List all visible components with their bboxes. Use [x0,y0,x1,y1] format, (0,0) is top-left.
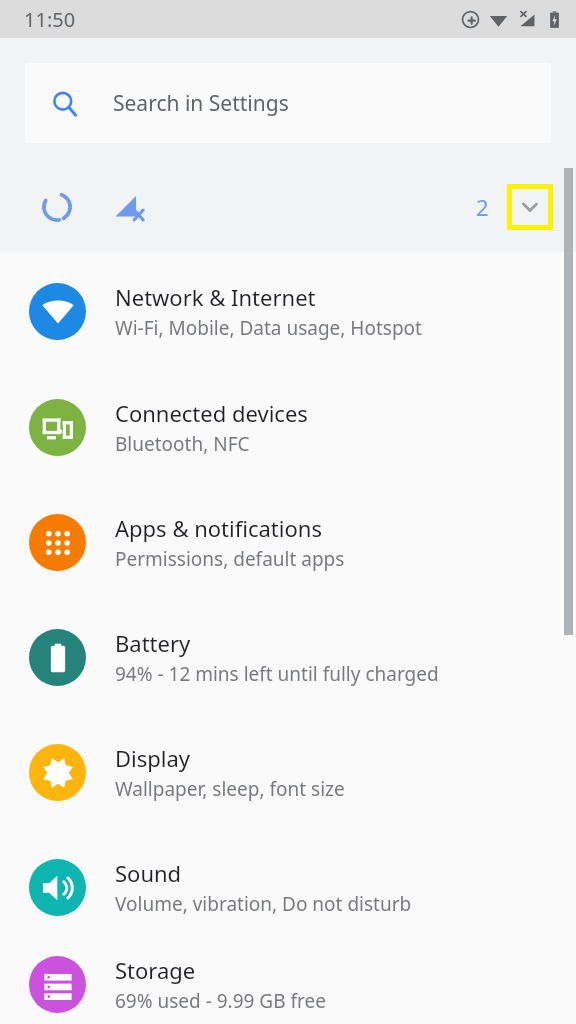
staticText: Wallpaper, sleep, font size [115,776,345,802]
staticText: 94% - 12 mins left until fully charged [115,661,439,687]
staticText: Connected devices [115,398,308,428]
staticText: Battery [115,628,191,658]
staticText: Display [115,743,191,773]
button[interactable]: Display [0,715,576,830]
button[interactable]: Battery [0,600,576,715]
button[interactable]: Apps & notifications [0,485,576,600]
button[interactable]: Storage [0,945,576,1024]
staticText: 69% used - 9.99 GB free [115,988,326,1014]
staticText: Search in Settings [113,89,289,118]
staticText: 2 [476,192,489,222]
staticText: Wi-Fi, Mobile, Data usage, Hotspot [115,315,422,341]
button[interactable]: Network & Internet [0,252,576,370]
button[interactable]: Search in Settings [25,63,551,143]
button[interactable]: Connected devices [0,370,576,485]
staticText: Sound [115,858,182,888]
button[interactable]: Sound [0,830,576,945]
staticText: Permissions, default apps [115,546,345,572]
staticText: 11:50 [24,6,76,33]
staticText: Volume, vibration, Do not disturb [115,891,412,917]
staticText: Storage [115,955,196,985]
staticText: Apps & notifications [115,513,322,543]
button[interactable]: Expand suggestions [512,189,548,225]
staticText: Network & Internet [115,282,316,312]
staticText: Bluetooth, NFC [115,431,250,457]
